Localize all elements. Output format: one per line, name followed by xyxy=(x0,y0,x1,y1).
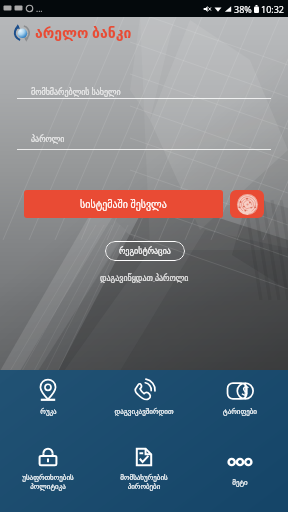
staticText: სისტემაში შესვლა xyxy=(80,197,167,211)
staticText: მეტი xyxy=(232,479,248,487)
staticText: დაგვიკავშირდით xyxy=(114,408,174,416)
staticText: 10:32 xyxy=(261,3,285,15)
staticText: მომხმარებლის სახელი xyxy=(31,86,121,97)
staticText: ... xyxy=(36,3,43,14)
button[interactable]: მომსახურების პირობები xyxy=(96,424,192,512)
button[interactable]: სისტემაში შესვლა xyxy=(24,190,223,218)
staticText: დაგავიწყდათ პაროლი xyxy=(100,272,189,283)
button[interactable]: დაგავიწყდათ პაროლი xyxy=(97,269,192,286)
button[interactable]: რეგისტრაცია xyxy=(105,241,185,261)
staticText: რეგისტრაცია xyxy=(119,247,171,256)
button[interactable]: Fingerprint login xyxy=(230,190,264,218)
button[interactable]: რუკა xyxy=(0,370,96,424)
staticText: პაროლი xyxy=(31,135,65,144)
button[interactable]: დაგვიკავშირდით xyxy=(96,370,192,424)
button[interactable]: უსაფრთხოების პოლიტიკა xyxy=(0,424,96,512)
staticText: მომსახურების პირობები xyxy=(120,474,168,491)
staticText: ტარიფები xyxy=(223,408,257,416)
staticText: რუკა xyxy=(40,408,57,416)
staticText: არელო ბანკი xyxy=(35,23,132,42)
button[interactable]: ტარიფები xyxy=(192,370,288,424)
button[interactable]: მეტი xyxy=(192,424,288,512)
staticText: უსაფრთხოების პოლიტიკა xyxy=(22,474,74,491)
staticText: 38% xyxy=(234,3,252,15)
